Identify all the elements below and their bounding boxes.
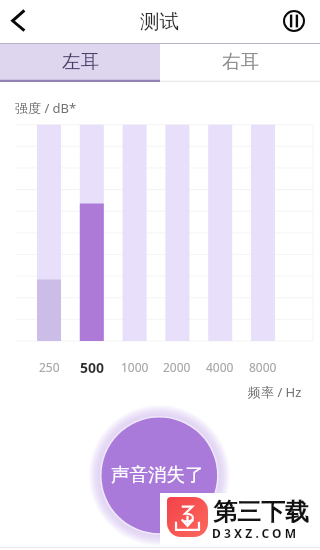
staticText: 250 <box>39 359 60 375</box>
staticText: 强度 / dB* <box>15 99 77 117</box>
staticText: 8000 <box>249 359 277 375</box>
staticText: 测试 <box>140 9 179 34</box>
button[interactable]: Back <box>0 0 38 43</box>
staticText: 频率 / Hz <box>248 383 302 401</box>
button[interactable]: 右耳 <box>160 43 320 82</box>
button[interactable]: 左耳 <box>0 43 160 82</box>
staticText: 500 <box>80 358 105 376</box>
staticText: 右耳 <box>222 50 259 73</box>
staticText: 1000 <box>121 359 149 375</box>
staticText: D3XZ.COM <box>212 525 300 541</box>
staticText: 声音消失了 <box>111 463 204 486</box>
staticText: 2000 <box>163 359 191 375</box>
button[interactable]: Pause <box>276 0 312 42</box>
staticText: 4000 <box>206 359 234 375</box>
staticText: 第三下载 <box>213 497 309 527</box>
staticText: 左耳 <box>62 50 99 73</box>
button[interactable]: 声音消失了 <box>101 417 217 533</box>
